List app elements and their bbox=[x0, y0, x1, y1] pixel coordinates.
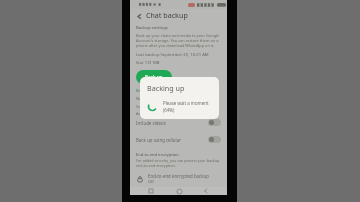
staticText: Back up using cellular bbox=[136, 137, 181, 143]
button[interactable]: Back bbox=[134, 11, 144, 21]
staticText: phone after you download WhatsApp on it. bbox=[136, 43, 215, 48]
button[interactable]: Recent apps bbox=[144, 187, 158, 195]
staticText: Back up your chats and media to your Goo… bbox=[136, 33, 220, 38]
button[interactable]: Home bbox=[172, 187, 186, 195]
staticText: For added security, you can protect your… bbox=[136, 158, 221, 163]
staticText: End-to-end encryption bbox=[136, 152, 179, 157]
staticText: Include videos bbox=[136, 120, 166, 126]
staticText: Never bbox=[136, 96, 148, 101]
staticText: end-to-end encryption. bbox=[136, 163, 176, 168]
staticText: Off bbox=[148, 179, 154, 184]
staticText: Back up to Google Drive bbox=[136, 88, 185, 94]
button[interactable]: Back up bbox=[136, 70, 172, 84]
button[interactable]: Back up using cellular bbox=[130, 133, 227, 146]
staticText: Google Account bbox=[136, 104, 166, 109]
staticText: Back up bbox=[145, 74, 163, 80]
staticText: Backup settings bbox=[136, 25, 168, 31]
staticText: Chat backup bbox=[146, 11, 188, 21]
staticText: Account's storage. You can restore them … bbox=[136, 38, 221, 43]
staticText: Size 131 MB bbox=[136, 60, 160, 66]
staticText: Backing up messages bbox=[147, 83, 212, 93]
button[interactable]: Include videos bbox=[130, 116, 227, 129]
button[interactable]: End-to-end encrypted backup bbox=[136, 173, 221, 184]
staticText: Add account bbox=[136, 111, 160, 116]
staticText: Last backup September 25, 10:01 AM bbox=[136, 52, 209, 58]
button[interactable]: Back bbox=[199, 187, 213, 195]
button[interactable]: Backing up messages bbox=[140, 77, 219, 119]
staticText: (64%) bbox=[163, 107, 175, 113]
staticText: End-to-end encrypted backup bbox=[148, 173, 209, 179]
staticText: Please wait a moment bbox=[163, 100, 209, 106]
